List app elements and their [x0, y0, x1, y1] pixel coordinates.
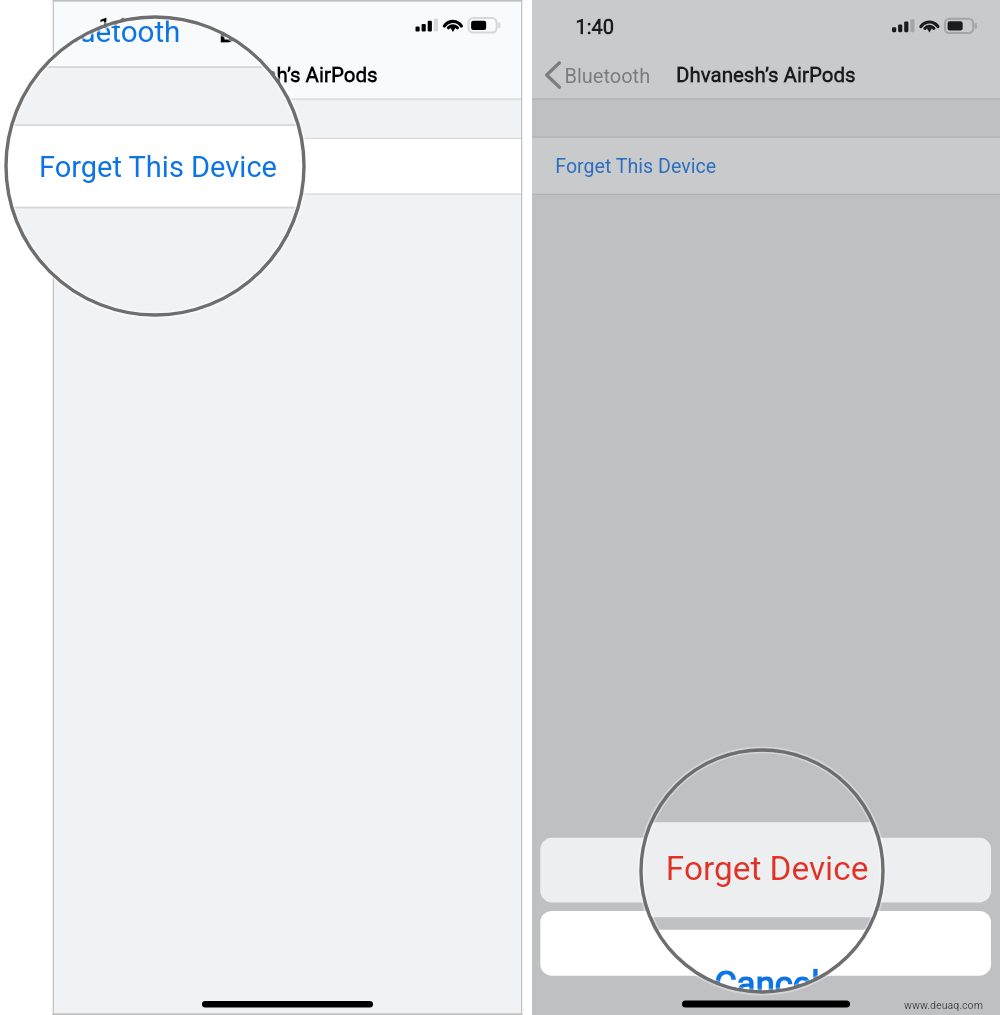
button[interactable]: Back to Bluetooth [540, 58, 658, 92]
button[interactable] [540, 911, 991, 976]
button[interactable] [54, 139, 521, 194]
button[interactable] [540, 838, 991, 903]
button[interactable]: Back to Bluetooth [62, 58, 180, 92]
button[interactable] [532, 138, 1000, 194]
